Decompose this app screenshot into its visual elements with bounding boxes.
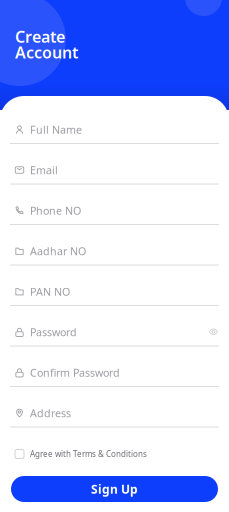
staticText: Sign Up xyxy=(91,481,138,497)
staticText: Phone NO xyxy=(30,203,81,218)
button[interactable]: Agree with Terms & Conditions xyxy=(0,447,229,461)
staticText: Email xyxy=(30,163,58,177)
staticText: Account xyxy=(15,42,78,63)
staticText: Aadhar NO xyxy=(30,244,86,258)
staticText: Full Name xyxy=(30,122,82,137)
staticText: Agree with Terms & Conditions xyxy=(30,449,147,459)
button[interactable]: Sign Up xyxy=(11,476,218,502)
staticText: Address xyxy=(30,406,71,420)
staticText: PAN NO xyxy=(30,284,70,299)
staticText: Confirm Password xyxy=(30,365,120,380)
staticText: Create xyxy=(15,26,65,47)
staticText: Password xyxy=(30,325,77,339)
